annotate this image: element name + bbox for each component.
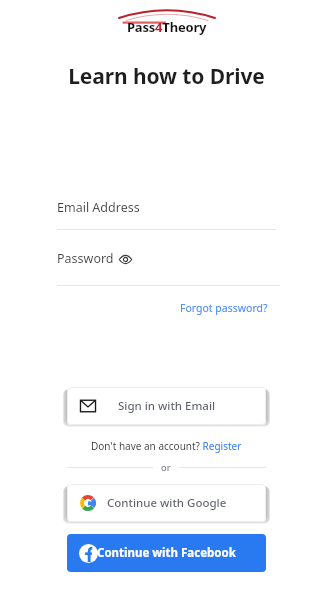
staticText: Email Address xyxy=(57,199,140,216)
button[interactable]: Continue with Google xyxy=(67,484,266,522)
button[interactable]: Email Address xyxy=(57,199,276,230)
staticText: Continue with Google xyxy=(107,495,227,511)
staticText: Forgot password? xyxy=(180,301,268,315)
button[interactable]: Show password xyxy=(118,252,132,266)
staticText: Continue with Facebook xyxy=(97,545,236,561)
staticText: Pass4Theory xyxy=(127,18,207,36)
staticText: Learn how to Drive xyxy=(68,62,265,91)
staticText: Password xyxy=(57,250,114,267)
button[interactable]: Continue with Facebook xyxy=(67,534,266,572)
other: Continue with Google xyxy=(79,494,97,512)
staticText: Don't have an account? Register xyxy=(91,439,242,453)
button[interactable]: Don't have an account? Register xyxy=(87,437,246,455)
other: Sign in with Email xyxy=(79,397,97,415)
button[interactable]: Sign in with Email xyxy=(67,387,266,425)
button[interactable]: Password xyxy=(57,250,280,286)
button[interactable]: Forgot password? xyxy=(178,299,270,317)
staticText: Sign in with Email xyxy=(118,398,216,414)
staticText: or xyxy=(161,461,171,474)
